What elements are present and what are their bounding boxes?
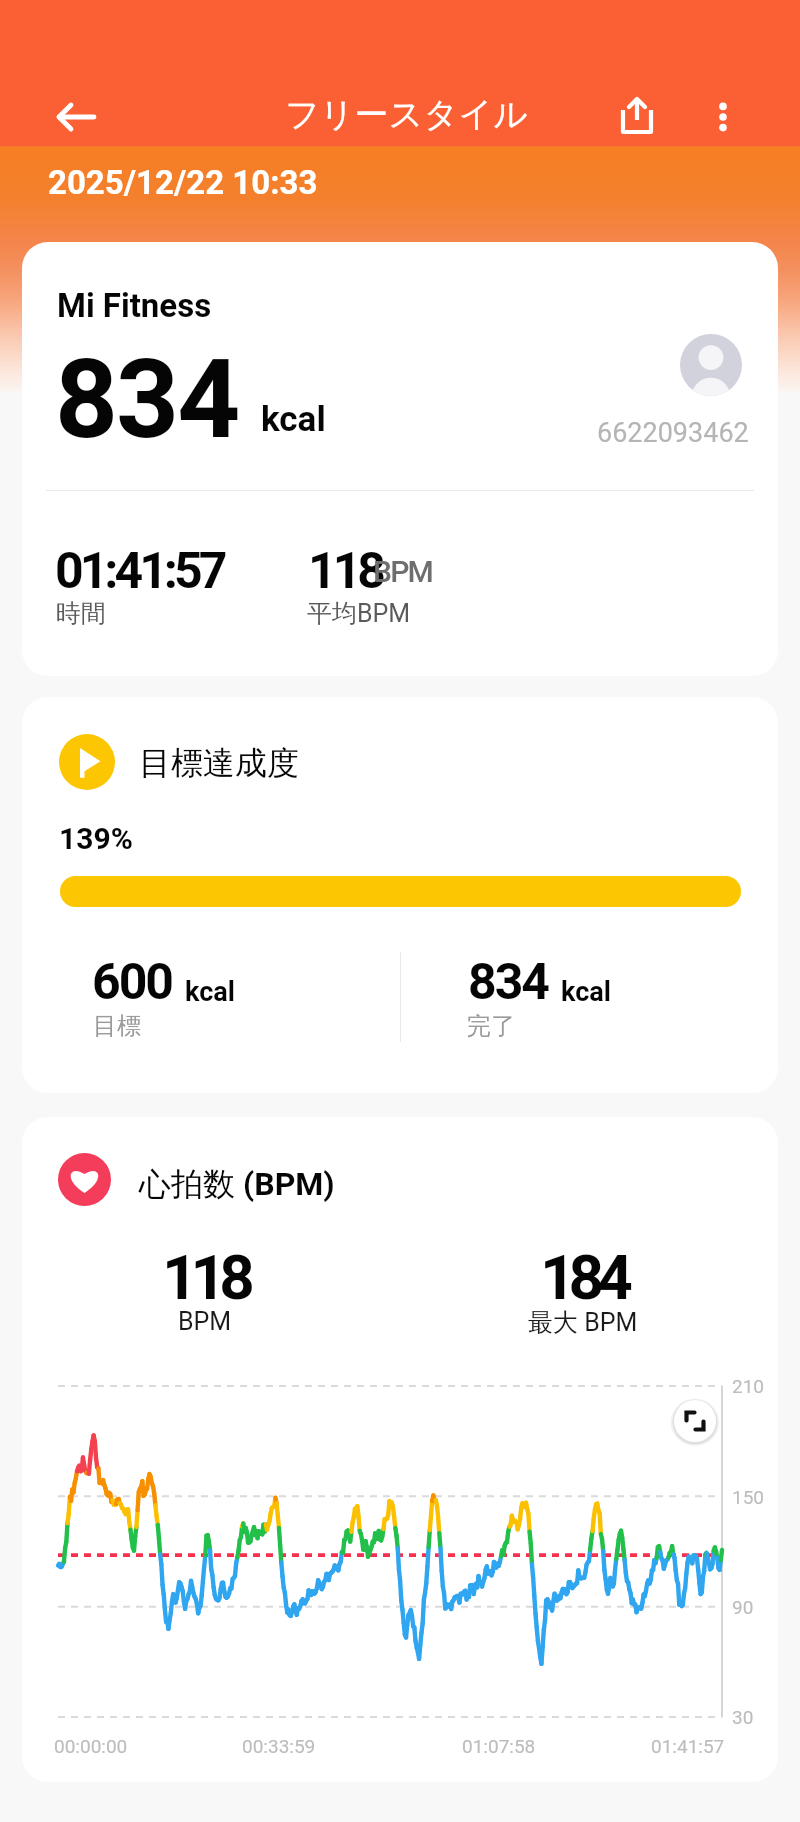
staticText: 00:00:00 [54, 1735, 128, 1757]
staticText: 210 [732, 1375, 765, 1397]
staticText: kcal [261, 399, 326, 440]
staticText: 150 [732, 1486, 765, 1508]
staticText: 834 [55, 335, 239, 464]
staticText: kcal [561, 976, 611, 1008]
staticText: 01:41:57 [651, 1735, 725, 1757]
staticText: 600 [92, 953, 173, 1012]
staticText: 目標達成度 [139, 743, 299, 783]
staticText: 時間 [56, 598, 106, 629]
staticText: 平均BPM [307, 598, 411, 629]
staticText: 6622093462 [597, 417, 749, 449]
staticText: BPM [373, 554, 432, 589]
staticText: kcal [185, 976, 235, 1008]
button[interactable]: More options [693, 87, 753, 147]
staticText: フリースタイル [285, 93, 528, 136]
staticText: 最大 BPM [528, 1307, 638, 1338]
button[interactable]: Expand chart [670, 1396, 720, 1446]
staticText: 118 [308, 542, 383, 601]
staticText: 139% [59, 821, 133, 856]
staticText: 2025/12/22 10:33 [48, 163, 318, 202]
staticText: 30 [732, 1706, 754, 1728]
staticText: 完了 [467, 1011, 515, 1041]
staticText: 01:07:58 [462, 1735, 536, 1757]
button[interactable]: Back [46, 87, 106, 147]
staticText: 834 [468, 953, 549, 1012]
staticText: 01:41:57 [55, 542, 224, 601]
staticText: 00:33:59 [242, 1735, 316, 1757]
staticText: 目標 [93, 1011, 141, 1041]
staticText: 心拍数 (BPM) [139, 1164, 335, 1204]
button[interactable]: Share [607, 87, 667, 147]
staticText: 90 [732, 1596, 754, 1618]
staticText: BPM [178, 1307, 232, 1336]
staticText: 184 [540, 1241, 626, 1314]
staticText: 118 [162, 1241, 248, 1314]
staticText: Mi Fitness [57, 286, 212, 325]
